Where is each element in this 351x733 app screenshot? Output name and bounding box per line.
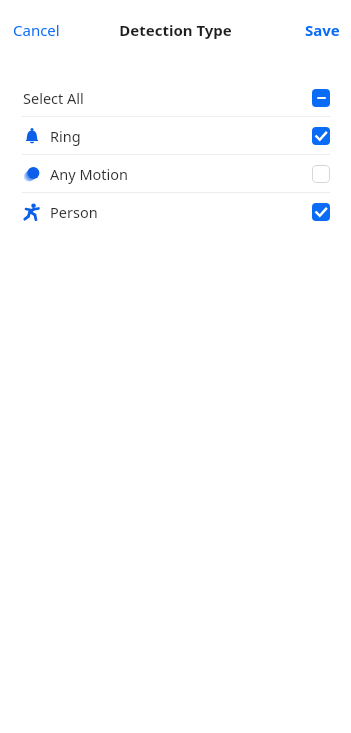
staticText: Person bbox=[50, 202, 98, 222]
button[interactable]: Person bbox=[0, 193, 351, 230]
button[interactable]: Cancel bbox=[6, 14, 67, 46]
other: Checked bbox=[312, 203, 330, 221]
staticText: Select All bbox=[23, 88, 84, 108]
other: Partially selected bbox=[312, 89, 330, 107]
staticText: Save bbox=[305, 20, 340, 40]
staticText: Cancel bbox=[13, 20, 60, 40]
other: Unchecked bbox=[312, 165, 330, 183]
other: Checked bbox=[312, 127, 330, 145]
button[interactable]: Save bbox=[300, 14, 345, 46]
staticText: Ring bbox=[50, 126, 81, 146]
staticText: Any Motion bbox=[50, 164, 129, 184]
button[interactable]: Select All bbox=[0, 79, 351, 116]
button[interactable]: Any Motion bbox=[0, 155, 351, 192]
button[interactable]: Ring bbox=[0, 117, 351, 154]
staticText: Detection Type bbox=[119, 20, 232, 40]
